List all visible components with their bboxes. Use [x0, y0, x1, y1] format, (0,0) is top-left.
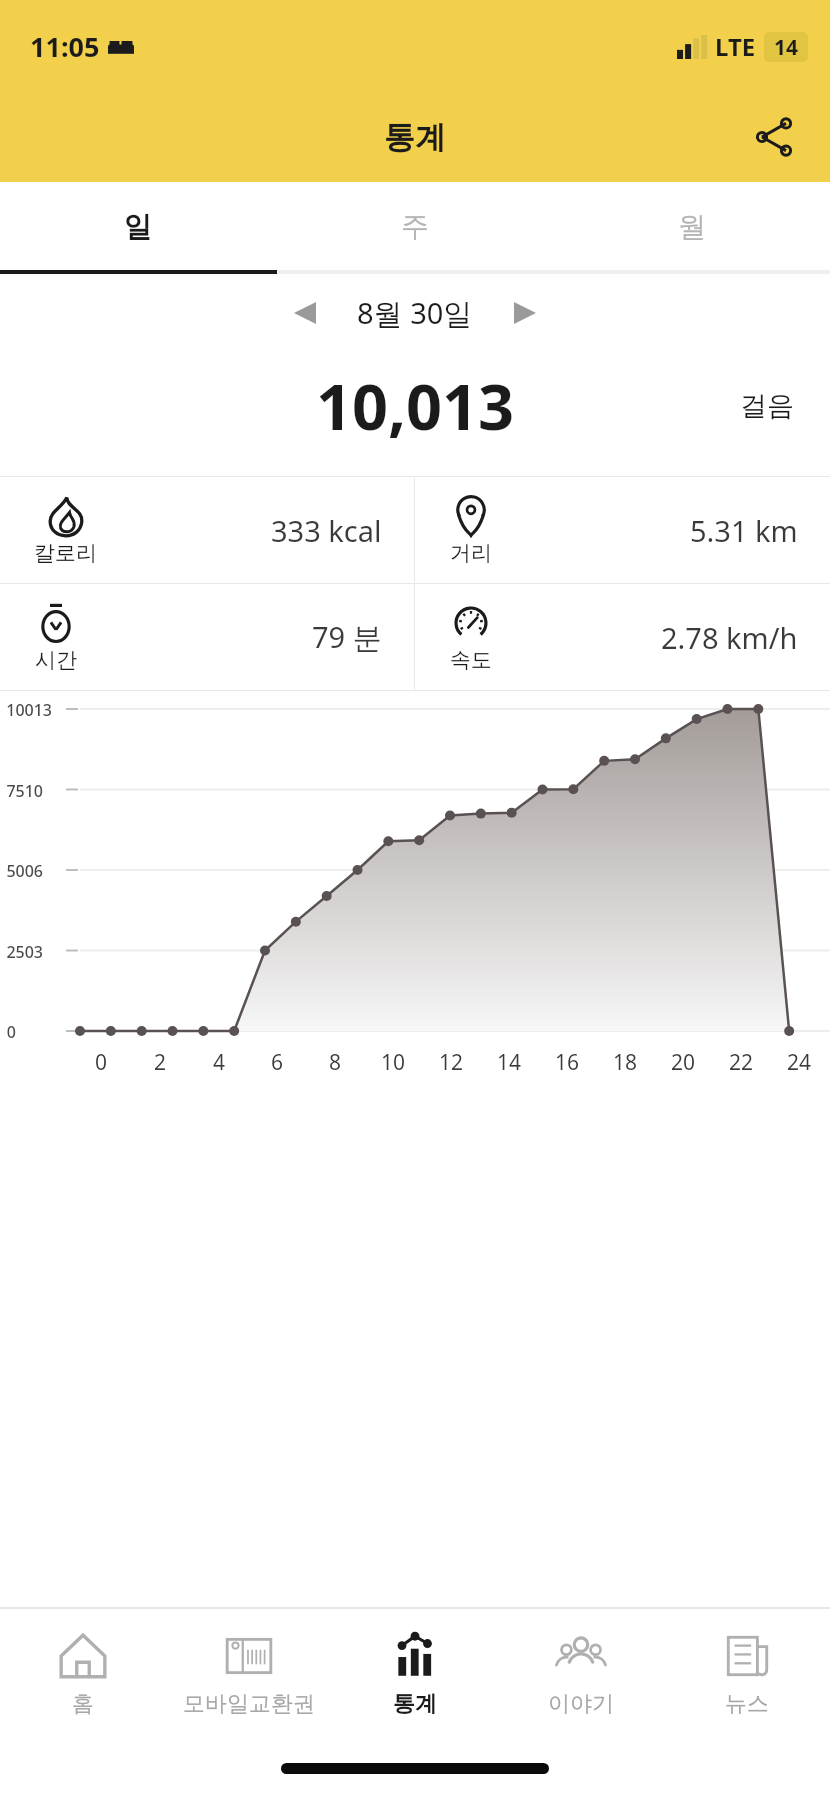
button[interactable]: Share: [742, 105, 806, 169]
staticText: 2503: [6, 941, 43, 963]
staticText: 거리: [450, 540, 492, 566]
staticText: 통계: [384, 118, 446, 157]
button[interactable]: 칼로리: [0, 477, 414, 583]
staticText: 5006: [6, 860, 43, 882]
staticText: 0: [95, 1048, 108, 1077]
staticText: 11:05: [30, 28, 100, 65]
staticText: 월: [678, 209, 706, 244]
staticText: 333 kcal: [271, 511, 382, 550]
staticText: 통계: [393, 1690, 437, 1718]
staticText: 20: [671, 1048, 696, 1077]
staticText: 6: [271, 1048, 284, 1077]
button[interactable]: 시간: [0, 584, 414, 690]
staticText: 14: [497, 1048, 522, 1077]
button[interactable]: 거리: [415, 477, 830, 583]
staticText: 일: [124, 209, 152, 244]
staticText: 8월 30일: [357, 293, 473, 333]
staticText: 24: [787, 1048, 812, 1077]
button[interactable]: Previous day: [279, 287, 331, 339]
staticText: 칼로리: [34, 540, 97, 566]
staticText: 22: [729, 1048, 754, 1077]
staticText: 10013: [6, 699, 52, 721]
staticText: 2: [154, 1048, 167, 1077]
staticText: 79 분: [312, 617, 382, 657]
button[interactable]: 통계: [332, 1609, 498, 1739]
button[interactable]: 이야기: [498, 1609, 664, 1739]
staticText: 10,013: [316, 363, 515, 449]
staticText: 12: [439, 1048, 464, 1077]
button[interactable]: Next day: [499, 287, 551, 339]
staticText: 0: [6, 1021, 16, 1043]
staticText: 10: [381, 1048, 406, 1077]
staticText: 8: [329, 1048, 342, 1077]
staticText: 이야기: [548, 1690, 614, 1718]
staticText: 16: [555, 1048, 580, 1077]
button[interactable]: 주: [276, 182, 553, 270]
staticText: 5.31 km: [690, 511, 798, 550]
staticText: 2.78 km/h: [661, 618, 798, 657]
button[interactable]: 모바일교환권: [166, 1609, 332, 1739]
button[interactable]: 속도: [415, 584, 830, 690]
button[interactable]: 월: [553, 182, 830, 270]
button[interactable]: 일: [0, 182, 276, 270]
staticText: 걸음: [740, 389, 794, 423]
staticText: 속도: [450, 647, 492, 673]
staticText: LTE: [715, 30, 756, 63]
staticText: 뉴스: [725, 1690, 769, 1718]
staticText: 4: [213, 1048, 226, 1077]
staticText: 주: [401, 209, 429, 244]
staticText: 홈: [72, 1690, 94, 1718]
staticText: 모바일교환권: [183, 1690, 315, 1718]
button[interactable]: 홈: [0, 1609, 166, 1739]
staticText: 18: [613, 1048, 638, 1077]
staticText: 시간: [35, 647, 77, 673]
staticText: 7510: [6, 780, 43, 802]
staticText: 14: [774, 33, 799, 62]
button[interactable]: 뉴스: [664, 1609, 830, 1739]
